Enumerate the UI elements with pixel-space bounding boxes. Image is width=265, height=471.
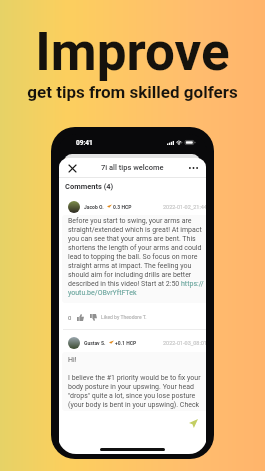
staticText: get tips from skilled golfers	[27, 82, 238, 102]
staticText: Gustav S.	[84, 340, 106, 346]
button[interactable]: Send	[186, 416, 200, 430]
staticText: Improve	[35, 21, 230, 83]
staticText: Before you start to swing, your arms are…	[68, 217, 205, 297]
button[interactable]: Dislike	[88, 312, 98, 322]
button[interactable]: Close	[66, 162, 78, 174]
staticText: Comments (4)	[65, 182, 114, 191]
staticText: Liked by Theodore T.	[101, 314, 147, 320]
staticText: 0	[68, 314, 72, 321]
staticText: 2022-01-03_08:01	[163, 340, 206, 346]
staticText: 09:41	[76, 139, 93, 147]
staticText: 2022-01-02_21:44	[163, 204, 206, 210]
staticText: Hi! I believe the #1 priority would be t…	[68, 356, 205, 409]
staticText: 0.3 HCP	[113, 204, 132, 210]
staticText: 7i all tips welcome	[101, 163, 164, 172]
button[interactable]: More options	[187, 162, 199, 174]
staticText: Jacob O.	[84, 204, 104, 210]
button[interactable]: Like	[75, 312, 85, 322]
staticText: +0.1 HCP	[115, 340, 137, 346]
